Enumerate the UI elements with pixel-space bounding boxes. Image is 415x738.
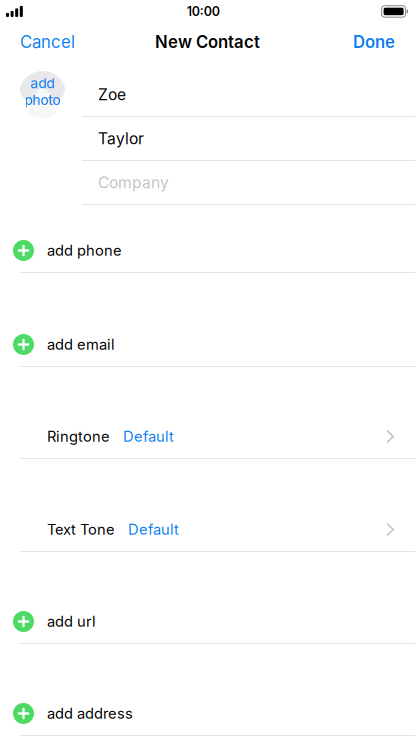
staticText: add email <box>47 336 115 353</box>
button[interactable]: add email <box>0 323 415 367</box>
staticText: Taylor <box>98 129 144 148</box>
staticText: New Contact <box>155 32 260 52</box>
staticText: add url <box>47 613 96 630</box>
staticText: Default <box>128 521 179 538</box>
button[interactable]: Ringtone <box>0 415 415 459</box>
button[interactable]: add phone <box>0 229 415 273</box>
button[interactable]: add address <box>0 692 415 736</box>
button[interactable]: Cancel <box>10 25 85 59</box>
staticText: Ringtone <box>47 428 110 445</box>
button[interactable]: Done <box>343 25 405 59</box>
staticText: Done <box>353 32 395 52</box>
button[interactable]: Add photo <box>19 71 66 118</box>
button[interactable]: Text Tone <box>0 508 415 552</box>
staticText: Cancel <box>20 32 75 52</box>
button[interactable]: add url <box>0 600 415 644</box>
staticText: Company <box>98 173 169 192</box>
staticText: 10:00 <box>187 4 220 19</box>
staticText: Default <box>123 428 174 445</box>
staticText: photo <box>24 92 60 108</box>
staticText: add phone <box>47 242 122 259</box>
staticText: add address <box>47 705 133 722</box>
staticText: Text Tone <box>47 521 115 538</box>
staticText: Zoe <box>98 85 126 104</box>
staticText: add <box>30 75 54 92</box>
